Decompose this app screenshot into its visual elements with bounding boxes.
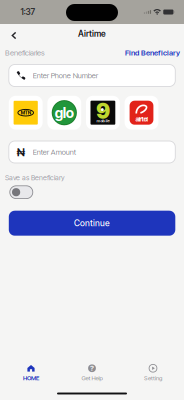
staticText: Airtime xyxy=(78,29,106,39)
button[interactable]: Save as Beneficiary xyxy=(10,186,33,199)
staticText: MTN xyxy=(21,110,31,116)
staticText: glo xyxy=(55,104,74,121)
staticText: HOME xyxy=(23,374,39,382)
button[interactable]: MTN xyxy=(9,96,43,130)
button[interactable]: ₦ xyxy=(9,141,175,163)
staticText: Get Help xyxy=(81,374,102,382)
button[interactable]: airtel xyxy=(125,96,158,130)
staticText: Find Beneficiary xyxy=(125,48,180,57)
button[interactable]: Setting xyxy=(122,359,183,387)
staticText: Save as Beneficiary xyxy=(5,173,65,182)
button[interactable]: Continue xyxy=(9,211,175,236)
staticText: Setting xyxy=(144,374,162,382)
staticText: ? xyxy=(90,364,94,373)
staticText: ₦ xyxy=(17,145,25,159)
button[interactable]: glo xyxy=(47,96,81,130)
button[interactable]: ? xyxy=(61,359,122,387)
button[interactable]: HOME xyxy=(0,359,61,387)
staticText: 1:37 xyxy=(20,7,35,17)
button[interactable]: Enter Phone Number xyxy=(9,64,175,86)
button[interactable]: Back xyxy=(5,27,23,44)
staticText: Beneficiaries xyxy=(5,48,45,57)
staticText: Enter Phone Number xyxy=(33,71,98,80)
staticText: 9 xyxy=(96,98,110,124)
staticText: airtel xyxy=(135,116,147,123)
staticText: Enter Amount xyxy=(33,147,76,156)
button[interactable]: Find Beneficiary xyxy=(125,48,180,57)
staticText: Continue xyxy=(74,218,110,228)
button[interactable]: 9 xyxy=(86,96,120,130)
staticText: mobile xyxy=(96,118,109,123)
